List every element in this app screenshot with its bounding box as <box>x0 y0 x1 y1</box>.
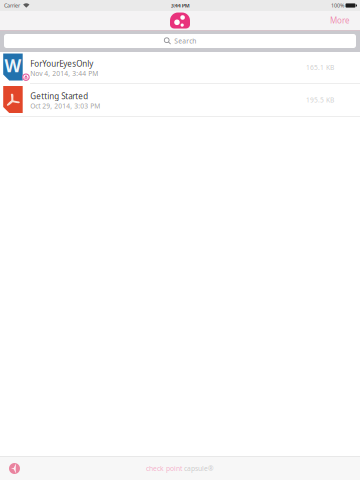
staticText: check point <box>146 464 184 473</box>
button[interactable]: Capsule <box>4 459 25 478</box>
button[interactable]: Getting Started <box>0 84 360 116</box>
staticText: Search <box>174 37 196 45</box>
staticText: Oct 29, 2014, 3:03 PM <box>30 101 100 110</box>
staticText: 195.5 KB <box>306 96 334 104</box>
button[interactable]: More <box>324 12 356 29</box>
staticText: 3:44 PM <box>171 2 190 9</box>
staticText: Getting Started <box>30 91 88 101</box>
staticText: More <box>330 15 350 26</box>
staticText: 100% <box>331 2 344 9</box>
staticText: W <box>4 54 21 77</box>
staticText: 165.1 KB <box>306 63 334 72</box>
staticText: ForYourEyesOnly <box>30 58 93 69</box>
staticText: capsule® <box>184 464 214 473</box>
staticText: Carrier <box>4 2 20 9</box>
staticText: Nov 4, 2014, 3:44 PM <box>30 69 98 78</box>
button[interactable]: Search <box>0 31 360 52</box>
button[interactable]: W <box>0 52 360 83</box>
